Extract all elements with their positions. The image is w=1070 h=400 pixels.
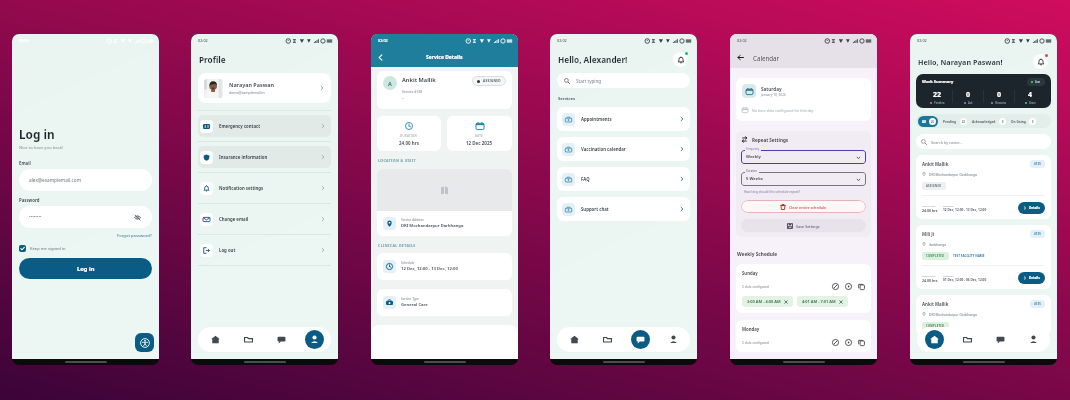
button[interactable]: Home <box>557 327 591 352</box>
button[interactable]: On Going <box>1011 118 1036 125</box>
button[interactable]: Ankit Mallik <box>916 155 1051 219</box>
button[interactable]: Details <box>1018 202 1045 214</box>
button[interactable]: All <box>918 116 938 127</box>
button[interactable]: Start typing <box>557 73 690 88</box>
button[interactable]: Insurance information <box>198 146 331 168</box>
staticText: Service Details <box>426 54 463 61</box>
button[interactable]: Block day <box>832 339 839 346</box>
button[interactable]: Messages <box>265 327 298 352</box>
staticText: Schedule <box>401 261 415 265</box>
button[interactable]: Home <box>917 327 951 352</box>
button[interactable]: Weekly <box>741 150 866 164</box>
staticText: demo@samplemail.in <box>229 90 265 95</box>
button[interactable]: Profile <box>298 327 331 352</box>
staticText: Insurance information <box>219 154 268 160</box>
staticText: Notification settings <box>219 185 264 191</box>
button[interactable]: •••••••• <box>19 206 152 228</box>
button[interactable]: Copy <box>858 339 865 346</box>
button[interactable]: Profile <box>657 327 690 352</box>
button[interactable]: Copy <box>858 283 865 290</box>
button[interactable]: Acknowledged <box>972 118 1006 125</box>
button[interactable]: Home <box>198 327 232 352</box>
staticText: 24.00 hrs <box>922 208 938 213</box>
button[interactable]: Mili Ji <box>916 225 1051 289</box>
button[interactable]: DATE <box>447 116 512 151</box>
staticText: Password <box>19 197 40 203</box>
staticText: Schedule <box>943 274 954 277</box>
button[interactable]: Notifications <box>673 52 688 67</box>
staticText: Log in <box>77 265 95 273</box>
button[interactable]: Log out <box>198 239 331 261</box>
staticText: Frequency <box>746 147 760 151</box>
button[interactable]: Ankit Mallik <box>916 295 1051 335</box>
staticText: Acknowledged <box>972 120 996 124</box>
button[interactable]: Save Settings <box>741 219 866 232</box>
button[interactable]: Back <box>375 52 386 63</box>
button[interactable]: FAQ <box>557 167 690 191</box>
staticText: COMPLETED <box>926 254 945 258</box>
staticText: •••••••• <box>29 214 42 220</box>
staticText: 12 Dec 2025 <box>466 140 493 146</box>
staticText: 12 Dec, 12:00 - 13 Dec, 12:00 <box>401 266 458 272</box>
staticText: Log out <box>219 247 236 253</box>
button[interactable]: Notifications <box>1033 54 1048 69</box>
button[interactable]: Pending <box>943 118 967 125</box>
staticText: Duration <box>746 169 758 173</box>
button[interactable]: Show password <box>133 213 142 222</box>
button[interactable]: Files <box>951 327 984 352</box>
staticText: 01 Dec, 12:00 - 06 Dec, 12:00 <box>943 278 987 282</box>
staticText: Service #138 <box>402 89 423 94</box>
staticText: 02:02 <box>917 38 927 43</box>
button[interactable]: 3:00 AM - 4:00 AM <box>742 296 793 307</box>
button[interactable]: Details <box>1018 272 1045 284</box>
button[interactable]: Schedule <box>377 253 512 280</box>
button[interactable]: Appointments <box>557 107 690 131</box>
staticText: 02:02 <box>198 38 208 43</box>
staticText: DATE <box>475 134 484 138</box>
button[interactable]: Files <box>591 327 624 352</box>
staticText: 12 Dec, 12:00 - 13 Dec, 12:00 <box>943 208 987 212</box>
button[interactable]: Apply <box>845 283 852 290</box>
button[interactable]: Service Address <box>377 211 512 236</box>
button[interactable]: A <box>377 71 512 109</box>
staticText: Calendar <box>753 54 780 62</box>
button[interactable]: alex@examplemail.com <box>19 169 152 191</box>
button[interactable]: Block day <box>832 283 839 290</box>
button[interactable]: Messages <box>624 327 657 352</box>
button[interactable]: Forgot password? <box>117 233 152 239</box>
staticText: Ack <box>968 101 973 104</box>
button[interactable]: Notification settings <box>198 177 331 199</box>
staticText: Hello, Alexander! <box>558 54 628 65</box>
staticText: Profile <box>199 54 226 65</box>
button[interactable]: Back <box>735 52 746 63</box>
staticText: DRI Mochandarpur Darbhanga <box>929 172 977 176</box>
button[interactable]: Search by name... <box>916 134 1051 149</box>
staticText: Clear entire schedule <box>789 205 827 210</box>
button[interactable]: DURATION <box>377 116 441 151</box>
button[interactable]: Vaccination calendar <box>557 137 690 161</box>
button[interactable]: Profile <box>1017 327 1050 352</box>
button[interactable]: Clear entire schedule <box>741 200 866 213</box>
staticText: Details <box>1029 276 1040 280</box>
staticText: Search by name... <box>931 140 963 145</box>
button[interactable]: 5 Weeks <box>741 172 866 186</box>
button[interactable]: Apply <box>845 339 852 346</box>
button[interactable]: Log in <box>19 258 152 279</box>
staticText: COMPLETED <box>926 324 945 328</box>
staticText: All <box>922 120 927 124</box>
staticText: Sunday <box>742 270 758 276</box>
staticText: Ankit Mallik <box>402 76 436 84</box>
button[interactable]: Emergency contact <box>198 115 331 137</box>
button[interactable]: Files <box>232 327 265 352</box>
button[interactable]: Service Type <box>377 289 512 316</box>
button[interactable]: Support chat <box>557 197 690 221</box>
button[interactable]: 4:01 AM - 7:01 AM <box>797 296 848 307</box>
staticText: Keep me signed in <box>30 246 66 252</box>
staticText: Mili Ji <box>922 231 934 237</box>
staticText: Support chat <box>581 206 609 212</box>
button[interactable]: Narayan Paswan <box>198 73 331 103</box>
button[interactable]: Accessibility <box>135 333 154 352</box>
button[interactable]: Change email <box>198 208 331 230</box>
button[interactable]: Keep me signed in <box>19 245 66 252</box>
button[interactable]: Messages <box>984 327 1017 352</box>
